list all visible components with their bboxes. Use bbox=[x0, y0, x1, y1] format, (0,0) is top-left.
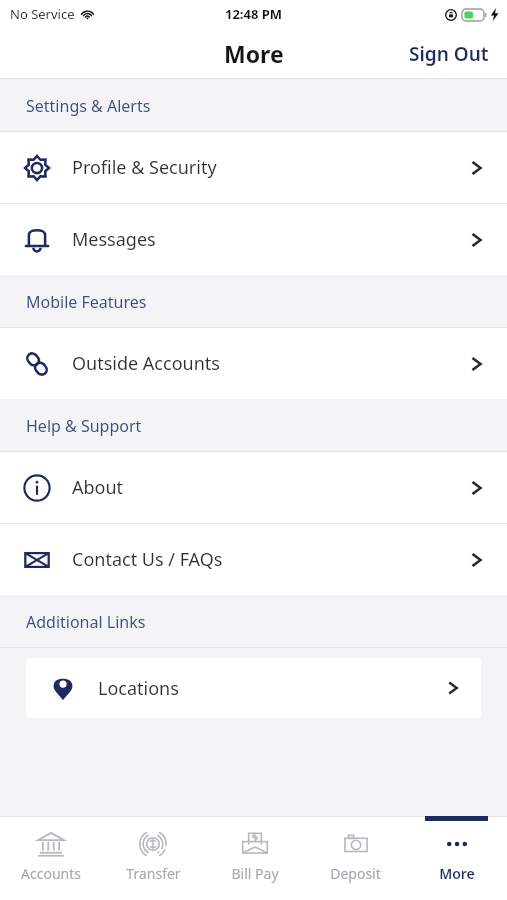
staticText: Messages bbox=[72, 227, 156, 252]
button[interactable]: More bbox=[406, 816, 507, 900]
staticText: More bbox=[224, 38, 284, 69]
button[interactable]: Bill Pay bbox=[204, 816, 305, 900]
staticText: Help & Support bbox=[26, 415, 142, 437]
staticText: Transfer bbox=[126, 864, 181, 883]
staticText: Bill Pay bbox=[231, 864, 279, 883]
staticText: Locations bbox=[98, 676, 179, 701]
staticText: More bbox=[439, 864, 475, 883]
button[interactable]: Accounts bbox=[0, 816, 102, 900]
staticText: Profile & Security bbox=[72, 155, 217, 180]
staticText: Deposit bbox=[330, 864, 381, 883]
button[interactable]: Outside Accounts bbox=[0, 328, 507, 399]
staticText: Mobile Features bbox=[26, 291, 147, 313]
staticText: About bbox=[72, 475, 124, 500]
button[interactable]: Transfer bbox=[102, 816, 204, 900]
staticText: Contact Us / FAQs bbox=[72, 547, 223, 572]
staticText: Settings & Alerts bbox=[26, 95, 151, 117]
button[interactable]: Locations bbox=[26, 658, 481, 718]
staticText: Additional Links bbox=[26, 611, 146, 633]
button[interactable]: Deposit bbox=[305, 816, 406, 900]
button[interactable]: Contact Us / FAQs bbox=[0, 524, 507, 595]
button[interactable]: Messages bbox=[0, 204, 507, 275]
staticText: No Service bbox=[10, 5, 75, 23]
button[interactable]: About bbox=[0, 452, 507, 523]
staticText: Sign Out bbox=[409, 41, 489, 67]
button[interactable]: Sign Out bbox=[391, 31, 507, 77]
staticText: Outside Accounts bbox=[72, 351, 220, 376]
staticText: 12:48 PM bbox=[225, 5, 283, 23]
staticText: Accounts bbox=[21, 864, 81, 883]
other: Wi-Fi bbox=[81, 8, 94, 21]
button[interactable]: Profile & Security bbox=[0, 132, 507, 203]
